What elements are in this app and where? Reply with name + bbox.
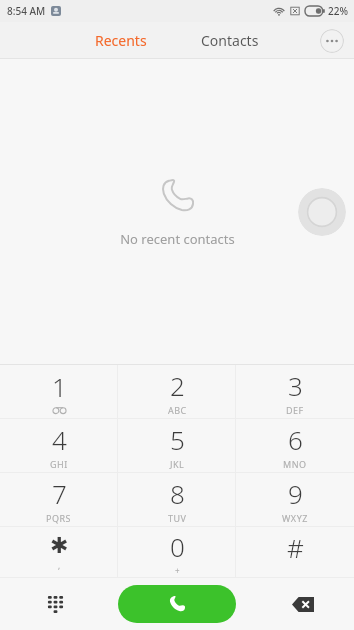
staticText: JKL	[170, 458, 185, 470]
staticText: No recent contacts	[120, 230, 235, 248]
button[interactable]: Recents	[81, 25, 161, 56]
button[interactable]: 4	[0, 419, 118, 472]
staticText: PQRS	[46, 512, 72, 524]
staticText: 4	[52, 422, 67, 457]
button[interactable]: Call	[118, 585, 236, 623]
staticText: 7	[52, 476, 67, 511]
staticText: 3	[288, 368, 303, 403]
staticText: 8:54 AM	[7, 4, 46, 18]
staticText: ,	[58, 560, 61, 571]
button[interactable]: 7	[0, 473, 118, 526]
button[interactable]: More options	[320, 29, 344, 53]
staticText: ABC	[168, 404, 187, 416]
button[interactable]: 2	[118, 365, 236, 418]
staticText: ✱	[50, 533, 69, 559]
staticText: 2	[170, 368, 185, 403]
staticText: WXYZ	[282, 512, 308, 524]
staticText: MNO	[283, 458, 307, 470]
button[interactable]: 0	[118, 527, 236, 577]
staticText: GHI	[50, 458, 68, 470]
button[interactable]: 8	[118, 473, 236, 526]
staticText: 8	[170, 476, 185, 511]
staticText: Contacts	[201, 31, 259, 50]
staticText: 0	[170, 529, 185, 564]
staticText: 6	[288, 422, 303, 457]
staticText: DEF	[286, 404, 304, 416]
staticText: 1	[52, 369, 67, 404]
button[interactable]: 3	[236, 365, 354, 418]
staticText: +	[175, 565, 181, 576]
button[interactable]: Contacts	[187, 25, 273, 56]
staticText: 5	[170, 422, 185, 457]
button[interactable]: Floating assistant	[298, 188, 346, 236]
staticText: 22%	[328, 4, 348, 18]
button[interactable]: Dialpad	[38, 587, 72, 621]
button[interactable]: 6	[236, 419, 354, 472]
button[interactable]: 5	[118, 419, 236, 472]
staticText: TUV	[168, 512, 187, 524]
button[interactable]: 1	[0, 365, 118, 418]
staticText: 9	[288, 476, 303, 511]
button[interactable]: Backspace	[286, 587, 320, 621]
button[interactable]: #	[236, 527, 354, 577]
button[interactable]: 9	[236, 473, 354, 526]
staticText: #	[287, 530, 304, 565]
button[interactable]: ✱	[0, 527, 118, 577]
staticText: Recents	[95, 31, 147, 50]
